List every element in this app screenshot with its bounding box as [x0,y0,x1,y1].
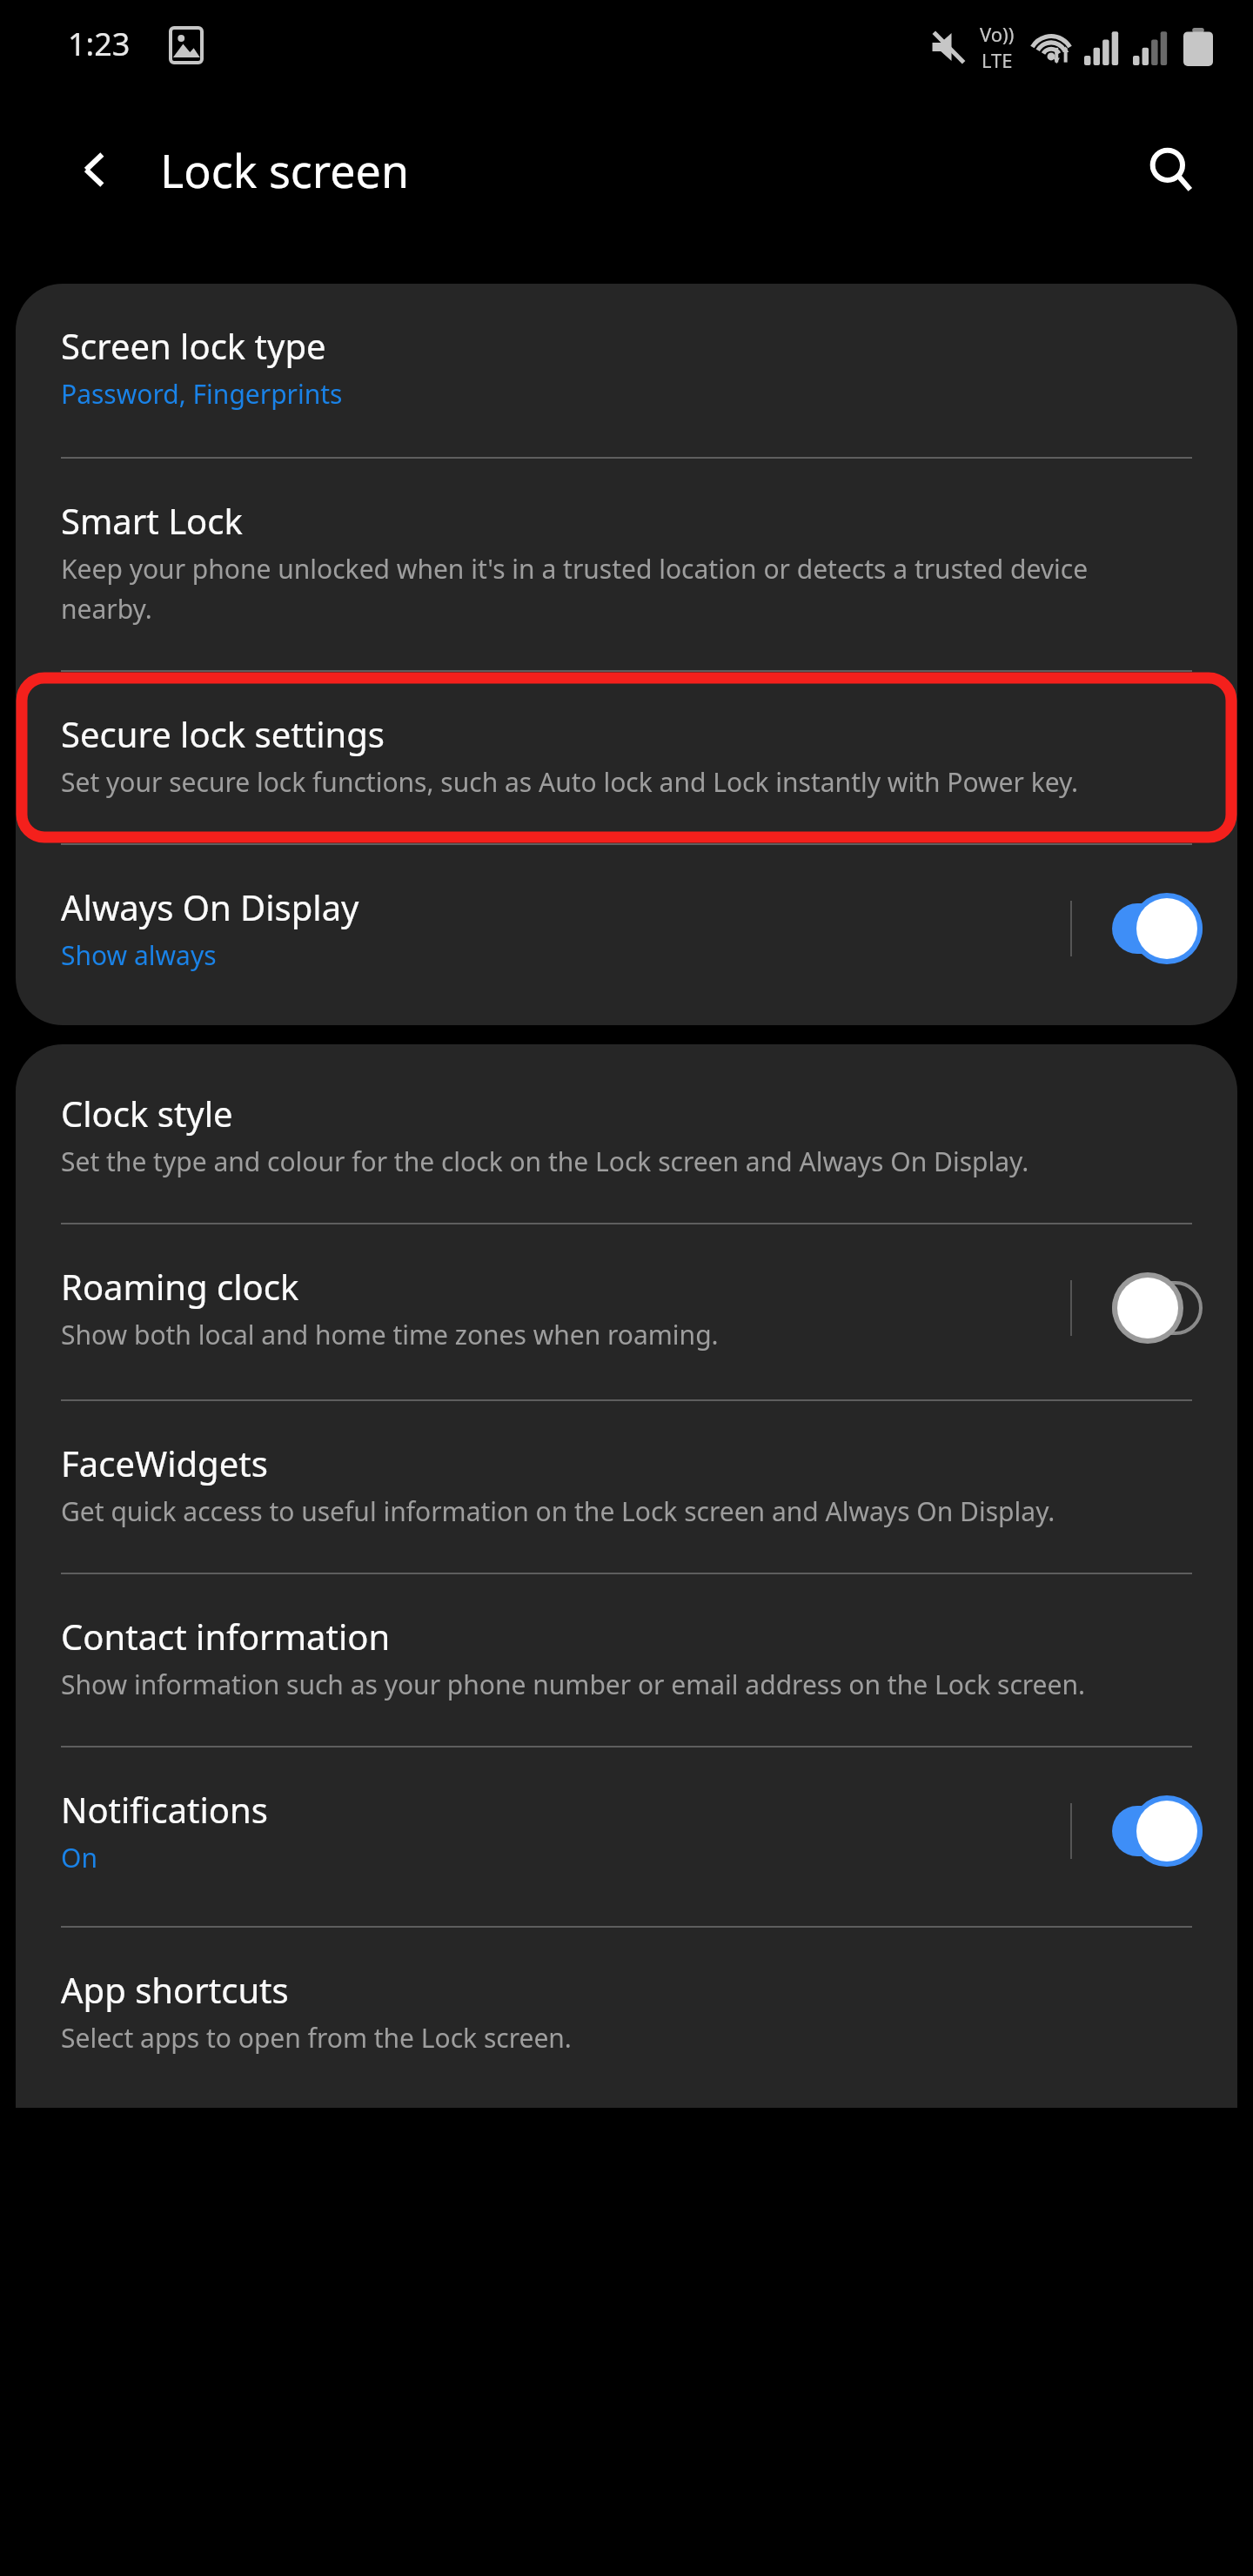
staticText: Show information such as your phone numb… [61,1667,1085,1702]
button[interactable]: FaceWidgets [16,1401,1237,1573]
staticText: Set the type and colour for the clock on… [61,1144,1029,1179]
button[interactable]: Toggle on [1112,891,1203,966]
staticText: Keep your phone unlocked when it's in a … [61,551,1180,627]
button[interactable]: Roaming clock [16,1224,1237,1399]
button[interactable]: Notifications [16,1748,1237,1926]
staticText: Show always [61,937,217,973]
staticText: Always On Display [61,883,359,930]
staticText: Secure lock settings [61,710,385,757]
staticText: FaceWidgets [61,1439,268,1486]
staticText: Set your secure lock functions, such as … [61,764,1079,800]
staticText: Vo)) [980,21,1015,47]
staticText: 1:23 [68,23,131,65]
button[interactable]: Always On Display [16,845,1237,1025]
button[interactable]: Contact information [16,1574,1237,1746]
button[interactable]: Secure lock settings [16,672,1237,843]
button[interactable]: Search [1129,128,1213,211]
staticText: Notifications [61,1786,268,1833]
staticText: Select apps to open from the Lock screen… [61,2020,572,2056]
staticText: Get quick access to useful information o… [61,1493,1055,1529]
staticText: Clock style [61,1090,233,1137]
staticText: Roaming clock [61,1263,299,1310]
button[interactable]: Smart Lock [16,459,1237,670]
button[interactable]: Toggle off [1112,1271,1203,1345]
staticText: Show both local and home time zones when… [61,1317,719,1352]
button[interactable]: App shortcuts [16,1928,1237,2108]
staticText: On [61,1840,97,1875]
staticText: Smart Lock [61,497,243,544]
staticText: Password, Fingerprints [61,376,343,412]
staticText: Contact information [61,1613,391,1660]
staticText: LTE [982,47,1013,73]
staticText: Lock screen [160,139,410,201]
button[interactable]: Screen lock type [16,284,1237,457]
staticText: Screen lock type [61,322,326,369]
button[interactable]: Clock style [16,1044,1237,1223]
staticText: App shortcuts [61,1966,289,2013]
button[interactable]: Toggle on [1112,1794,1203,1868]
button[interactable]: Back [54,128,137,211]
